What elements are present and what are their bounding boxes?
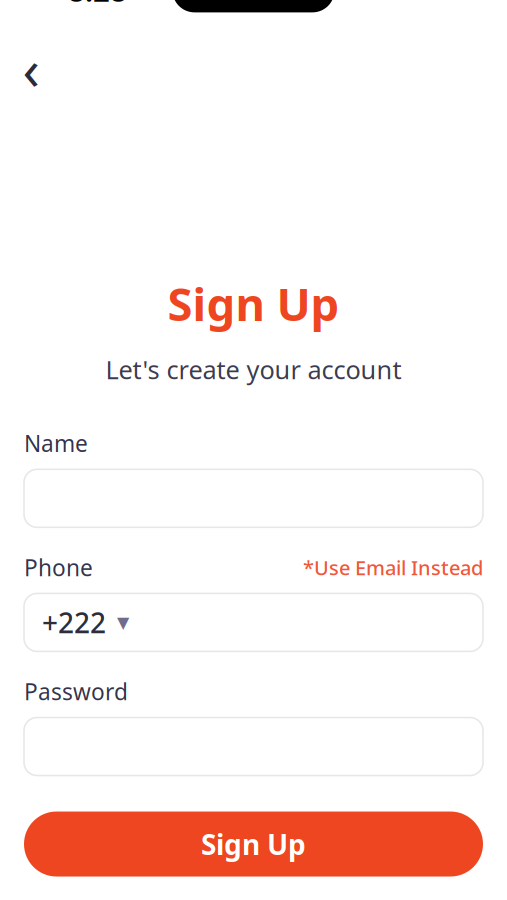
staticText: +222 (42, 604, 106, 641)
staticText: Sign Up (201, 825, 306, 863)
staticText: Phone (24, 552, 93, 582)
staticText: ▼ (117, 613, 129, 631)
button[interactable]: Sign Up (24, 811, 483, 876)
staticText: Let's create your account (105, 353, 401, 386)
staticText: 8:28 (68, 0, 127, 10)
staticText: Password (24, 676, 128, 706)
staticText: ‹ (22, 31, 39, 106)
staticText: *Use Email Instead (303, 554, 483, 581)
staticText: Name (24, 428, 88, 458)
staticText: Sign Up (167, 273, 339, 334)
button[interactable]: Back (9, 46, 53, 90)
button[interactable]: *Use Email Instead (303, 554, 483, 581)
